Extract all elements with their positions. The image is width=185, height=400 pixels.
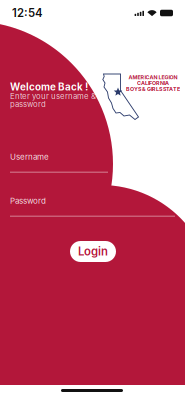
button[interactable]: Login: [70, 241, 116, 262]
staticText: password: [10, 100, 46, 109]
staticText: BOYS & GIRLS STATE: [126, 86, 180, 92]
staticText: CALIFORNIA: [137, 80, 169, 86]
staticText: Enter your username &: [10, 91, 96, 101]
staticText: 12:54: [12, 6, 43, 20]
staticText: Username: [10, 152, 49, 162]
staticText: AMERICAN LEGION: [128, 74, 177, 80]
staticText: Login: [78, 245, 108, 258]
staticText: Password: [10, 196, 46, 206]
staticText: Welcome Back !: [10, 81, 88, 93]
